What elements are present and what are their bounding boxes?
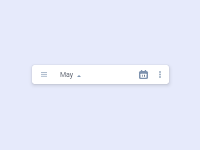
- button[interactable]: Calendar: [137, 68, 150, 81]
- button[interactable]: Menu: [37, 68, 50, 81]
- staticText: May: [60, 71, 74, 79]
- button[interactable]: More options: [153, 68, 166, 81]
- button[interactable]: May: [60, 65, 81, 84]
